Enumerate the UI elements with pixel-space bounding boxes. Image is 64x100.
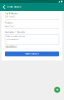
staticText: Order Details xyxy=(7,6,21,8)
staticText: Delivery completed on time xyxy=(6,35,25,37)
staticText: Trip ID Number xyxy=(5,13,18,15)
staticText: Submit Details xyxy=(25,53,39,55)
staticText: Attach Photo xyxy=(6,46,16,48)
button[interactable]: Add xyxy=(54,87,60,93)
button[interactable]: Back xyxy=(2,3,6,11)
staticText: to the main depot. xyxy=(6,38,19,40)
staticText: Diesel Fuel xyxy=(5,25,13,27)
staticText: TRP-100457 xyxy=(5,16,15,18)
staticText: Products xyxy=(5,22,13,24)
staticText: Description / Remarks xyxy=(5,31,25,33)
button[interactable]: Attach Photo xyxy=(5,45,17,48)
button[interactable]: Submit Details xyxy=(5,51,59,56)
